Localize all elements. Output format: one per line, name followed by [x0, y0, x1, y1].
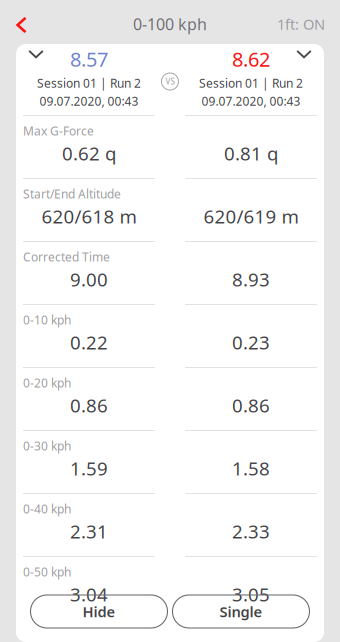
staticText: 1.59: [70, 456, 108, 481]
staticText: 0-30 kph: [23, 438, 71, 454]
staticText: 9.00: [70, 267, 108, 292]
staticText: 0.23: [232, 330, 270, 355]
staticText: 8.62: [232, 46, 270, 72]
staticText: Max G-Force: [23, 123, 94, 139]
staticText: Start/End Altitude: [23, 186, 121, 202]
staticText: Session 01 | Run 2: [37, 75, 141, 91]
button[interactable]: Collapse run: [286, 46, 324, 67]
staticText: 0.86: [70, 393, 108, 418]
staticText: Session 01 | Run 2: [199, 75, 303, 91]
staticText: 09.07.2020, 00:43: [39, 93, 138, 109]
button[interactable]: Back: [0, 2, 41, 41]
staticText: Single: [219, 602, 262, 621]
staticText: 2.33: [232, 519, 270, 544]
staticText: 0-20 kph: [23, 375, 71, 391]
staticText: 0-40 kph: [23, 501, 71, 517]
staticText: 1.58: [232, 456, 270, 481]
button[interactable]: Collapse run: [16, 46, 54, 67]
staticText: 09.07.2020, 00:43: [201, 93, 300, 109]
staticText: 3.05: [232, 582, 270, 607]
staticText: 0.86: [232, 393, 270, 418]
staticText: 0.81 q: [224, 141, 278, 166]
button[interactable]: Hide: [30, 595, 167, 628]
staticText: 8.57: [70, 46, 108, 72]
staticText: 620/618 m: [41, 204, 136, 229]
staticText: 3.04: [70, 582, 108, 607]
staticText: 0-10 kph: [23, 312, 71, 328]
staticText: 1ft: ON: [277, 14, 325, 34]
staticText: Corrected Time: [23, 249, 110, 265]
staticText: 0-100 kph: [133, 13, 207, 35]
button[interactable]: Single: [172, 595, 309, 628]
staticText: 0-50 kph: [23, 564, 71, 580]
staticText: 0.62 q: [62, 141, 116, 166]
staticText: 8.93: [232, 267, 270, 292]
staticText: Hide: [82, 602, 115, 621]
staticText: VS: [165, 76, 174, 87]
staticText: 0.22: [70, 330, 108, 355]
staticText: 2.31: [70, 519, 108, 544]
staticText: 620/619 m: [203, 204, 298, 229]
